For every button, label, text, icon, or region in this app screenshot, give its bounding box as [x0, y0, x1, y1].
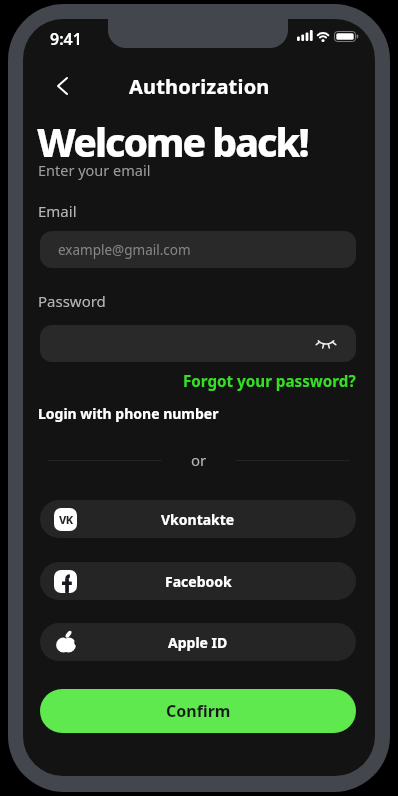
staticText: Email: [38, 201, 77, 221]
button[interactable]: VK: [40, 500, 356, 538]
staticText: Enter your email: [38, 160, 151, 180]
staticText: Apple ID: [168, 633, 228, 652]
staticText: Confirm: [166, 700, 231, 722]
staticText: Login with phone number: [38, 404, 219, 423]
button[interactable]: Apple ID: [40, 623, 356, 661]
staticText: Welcome back!: [37, 115, 308, 168]
button[interactable]: example@gmail.com: [40, 231, 356, 268]
staticText: or: [191, 450, 207, 470]
button[interactable]: [48, 72, 76, 100]
staticText: 9:41: [50, 28, 82, 50]
staticText: VK: [59, 512, 73, 527]
staticText: example@gmail.com: [58, 241, 191, 259]
button[interactable]: Confirm: [40, 689, 356, 733]
button[interactable]: Forgot your password?: [183, 371, 356, 392]
button[interactable]: [40, 325, 356, 362]
staticText: Facebook: [165, 572, 232, 591]
button[interactable]: Facebook: [40, 562, 356, 600]
staticText: Password: [38, 291, 106, 311]
staticText: Authorization: [129, 73, 270, 100]
staticText: Vkontakte: [161, 510, 235, 529]
